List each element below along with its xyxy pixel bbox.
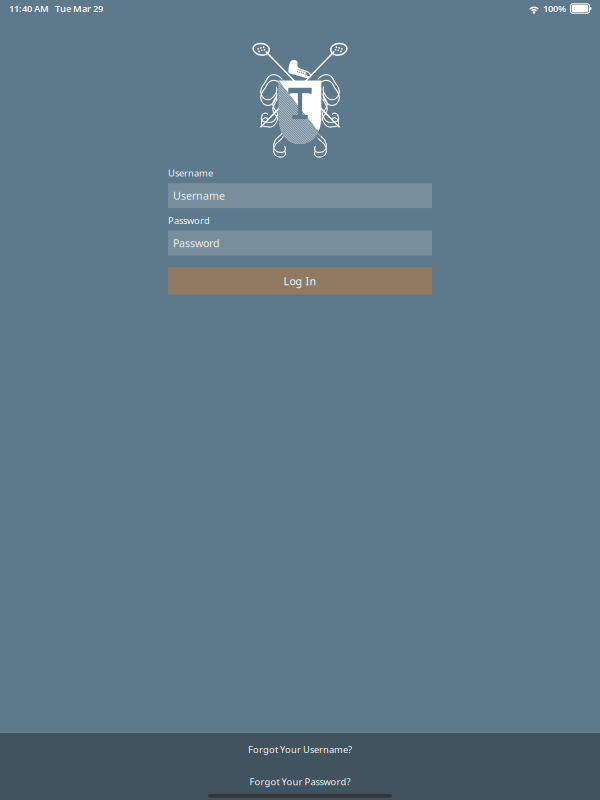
staticText: Username: [168, 167, 213, 179]
button[interactable]: Forgot Your Password?: [0, 769, 600, 794]
button[interactable]: Log In: [168, 267, 432, 294]
staticText: Tue Mar 29: [55, 2, 103, 15]
staticText: Password: [173, 236, 220, 250]
staticText: Forgot Your Username?: [248, 743, 352, 755]
staticText: 11:40 AM: [9, 2, 49, 15]
staticText: Log In: [283, 274, 316, 288]
staticText: Username: [173, 188, 225, 203]
button[interactable]: Forgot Your Username?: [0, 737, 600, 761]
staticText: Password: [168, 214, 210, 226]
staticText: 100%: [543, 2, 566, 15]
button[interactable]: Username: [168, 183, 432, 208]
button[interactable]: Password: [168, 230, 432, 255]
staticText: Forgot Your Password?: [249, 775, 350, 788]
